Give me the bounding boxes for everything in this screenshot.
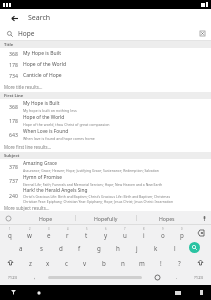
- button[interactable]: 378: [0, 159, 211, 173]
- button[interactable]: b: [94, 255, 113, 270]
- button[interactable]: Recents: [165, 285, 191, 300]
- button[interactable]: Home: [26, 285, 52, 300]
- button[interactable]: Back: [8, 12, 20, 24]
- button[interactable]: 3: [39, 225, 58, 240]
- staticText: Assurance; Grace; Heaven; Hope; Justifyi…: [23, 168, 159, 173]
- staticText: Amazing Grace: [23, 160, 57, 167]
- button[interactable]: Clear: [198, 29, 207, 38]
- staticText: o: [161, 231, 165, 239]
- staticText: Subject: [4, 153, 20, 159]
- staticText: b: [102, 259, 106, 267]
- staticText: More title results...: [4, 84, 43, 90]
- button[interactable]: c: [57, 255, 75, 270]
- button[interactable]: 7: [115, 225, 134, 240]
- staticText: q: [8, 231, 12, 239]
- button[interactable]: 0: [172, 225, 191, 240]
- button[interactable]: 368: [0, 48, 211, 59]
- staticText: Hopes: [159, 215, 175, 222]
- staticText: 378: [9, 163, 18, 170]
- button[interactable]: Emoji: [146, 270, 168, 285]
- button[interactable]: g: [89, 240, 108, 255]
- staticText: When love is found and hope comes home: [23, 136, 95, 141]
- button[interactable]: Space: [44, 270, 146, 285]
- staticText: j: [136, 244, 138, 252]
- staticText: 4: [67, 227, 69, 231]
- button[interactable]: More title results...: [0, 81, 211, 92]
- staticText: 178: [9, 117, 18, 124]
- button[interactable]: k: [146, 240, 165, 255]
- staticText: 3: [48, 227, 50, 231]
- staticText: Hope of the World: [23, 61, 66, 68]
- staticText: 240: [9, 192, 18, 199]
- staticText: m: [139, 259, 145, 267]
- button[interactable]: Change keyboard: [0, 285, 26, 300]
- button[interactable]: More subject results...: [0, 204, 211, 211]
- staticText: Hope: [18, 29, 35, 38]
- button[interactable]: h: [108, 240, 127, 255]
- button[interactable]: 1: [0, 225, 20, 240]
- button[interactable]: ?123: [186, 270, 211, 285]
- button[interactable]: a: [11, 240, 31, 255]
- staticText: Hark! the Herald Angels Sing: [23, 187, 88, 194]
- staticText: g: [97, 244, 101, 252]
- button[interactable]: d: [51, 240, 70, 255]
- button[interactable]: ,: [26, 270, 44, 285]
- staticText: i: [143, 231, 145, 239]
- staticText: n: [121, 259, 125, 267]
- button[interactable]: 4: [58, 225, 77, 240]
- button[interactable]: l: [165, 240, 184, 255]
- staticText: e: [47, 231, 51, 239]
- button[interactable]: j: [127, 240, 146, 255]
- button[interactable]: Hopes: [137, 215, 197, 222]
- staticText: My Hope is Built: [23, 50, 62, 57]
- button[interactable]: n: [113, 255, 132, 270]
- staticText: Hope of the world, thou Christ of great …: [23, 122, 110, 127]
- button[interactable]: f: [70, 240, 89, 255]
- button[interactable]: 368: [0, 99, 211, 113]
- button[interactable]: 178: [0, 59, 211, 70]
- button[interactable]: More first line results...: [0, 141, 211, 152]
- staticText: ?: [178, 259, 181, 267]
- button[interactable]: Hope: [16, 215, 75, 222]
- staticText: .: [176, 274, 178, 281]
- button[interactable]: v: [75, 255, 94, 270]
- button[interactable]: 9: [153, 225, 172, 240]
- button[interactable]: 8: [134, 225, 153, 240]
- staticText: t: [85, 231, 88, 239]
- button[interactable]: Backspace: [191, 225, 211, 240]
- staticText: u: [123, 231, 127, 239]
- staticText: ?123: [8, 275, 18, 281]
- staticText: My Hope is Built: [23, 100, 60, 107]
- button[interactable]: m: [132, 255, 151, 270]
- staticText: 0: [181, 227, 183, 231]
- button[interactable]: s: [31, 240, 51, 255]
- staticText: !: [160, 259, 162, 267]
- button[interactable]: 2: [20, 225, 39, 240]
- staticText: Hope of the World: [23, 114, 65, 121]
- button[interactable]: Hopefully: [76, 215, 136, 222]
- button[interactable]: Shift: [189, 255, 211, 270]
- button[interactable]: ?123: [0, 270, 26, 285]
- button[interactable]: 734: [0, 70, 211, 81]
- button[interactable]: 6: [96, 225, 115, 240]
- button[interactable]: x: [39, 255, 57, 270]
- button[interactable]: !: [151, 255, 170, 270]
- button[interactable]: Search: [184, 240, 205, 255]
- staticText: When Love is Found: [23, 128, 69, 135]
- button[interactable]: Shift: [0, 255, 21, 270]
- button[interactable]: ?: [170, 255, 189, 270]
- button[interactable]: 643: [0, 127, 211, 141]
- button[interactable]: 5: [77, 225, 96, 240]
- staticText: 5: [86, 227, 88, 231]
- button[interactable]: 240: [0, 187, 211, 204]
- staticText: 737: [9, 177, 18, 184]
- button[interactable]: 737: [0, 173, 211, 187]
- button[interactable]: z: [21, 255, 39, 270]
- button[interactable]: More options: [191, 285, 211, 300]
- staticText: More first line results...: [4, 144, 52, 150]
- staticText: 643: [9, 131, 18, 138]
- button[interactable]: Clipboard: [0, 216, 16, 221]
- button[interactable]: 178: [0, 113, 211, 127]
- button[interactable]: Voice input: [197, 216, 211, 221]
